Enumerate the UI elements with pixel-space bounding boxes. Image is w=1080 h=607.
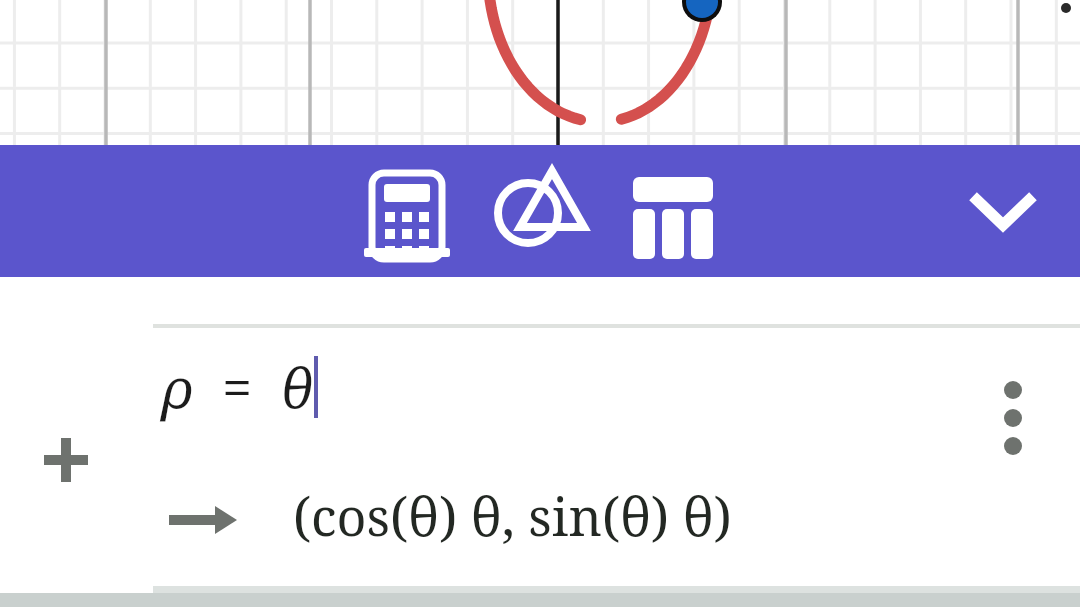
button[interactable]: (cos(θ) θ, sin(θ) θ) — [153, 470, 1080, 570]
button[interactable]: Table — [613, 145, 733, 277]
button[interactable]: Collapse keyboard — [948, 145, 1058, 277]
button[interactable]: More options — [973, 350, 1053, 430]
staticText: ρ = θ — [163, 350, 313, 424]
button[interactable]: ρ = θ — [153, 332, 953, 452]
button[interactable]: Geometry — [480, 145, 600, 277]
button[interactable]: Calculator — [347, 145, 467, 277]
staticText: (cos(θ) θ, sin(θ) θ) — [293, 480, 732, 551]
button[interactable]: Add expression — [26, 420, 106, 500]
